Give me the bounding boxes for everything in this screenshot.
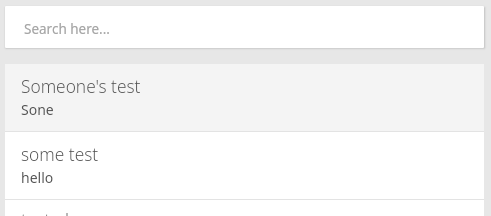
staticText: Sone [21, 100, 54, 120]
staticText: Someone's test [21, 75, 141, 99]
staticText: some test [21, 143, 99, 167]
staticText: hello [21, 168, 54, 188]
staticText: Search here... [24, 20, 110, 38]
button[interactable]: Search here... [5, 6, 484, 48]
button[interactable]: Someone's test [5, 64, 484, 132]
button[interactable]: some test [5, 132, 484, 200]
staticText: test ok [21, 209, 74, 216]
